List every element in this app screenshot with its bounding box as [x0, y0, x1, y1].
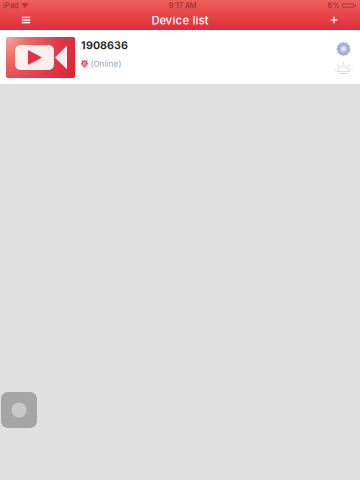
- button[interactable]: Add device: [322, 12, 346, 28]
- staticText: 6%: [327, 1, 339, 10]
- staticText: (Online): [90, 59, 121, 69]
- staticText: iPad: [3, 1, 19, 10]
- button[interactable]: Menu: [14, 12, 38, 28]
- button[interactable]: Settings: [336, 42, 350, 56]
- button[interactable]: Light: [334, 61, 353, 74]
- staticText: 9:17 AM: [169, 1, 197, 10]
- staticText: 1908636: [81, 39, 128, 52]
- button[interactable]: Record: [1, 392, 37, 428]
- staticText: Device list: [151, 14, 208, 27]
- button[interactable]: 1908636: [0, 30, 360, 84]
